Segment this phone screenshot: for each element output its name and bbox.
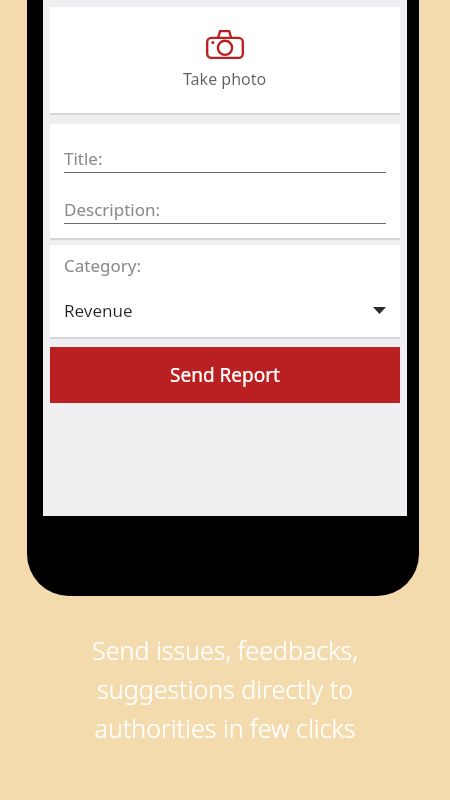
button[interactable]: Send Report bbox=[50, 347, 400, 403]
staticText: Title: bbox=[64, 147, 103, 170]
staticText: Send issues, feedbacks, suggestions dire… bbox=[92, 633, 358, 745]
staticText: Take photo bbox=[183, 68, 267, 90]
staticText: Category: bbox=[64, 254, 141, 277]
button[interactable]: Take photo bbox=[50, 7, 400, 113]
staticText: Revenue bbox=[64, 299, 133, 322]
staticText: Description: bbox=[64, 198, 161, 221]
button[interactable]: Category: bbox=[50, 245, 400, 337]
staticText: Send Report bbox=[170, 362, 280, 388]
